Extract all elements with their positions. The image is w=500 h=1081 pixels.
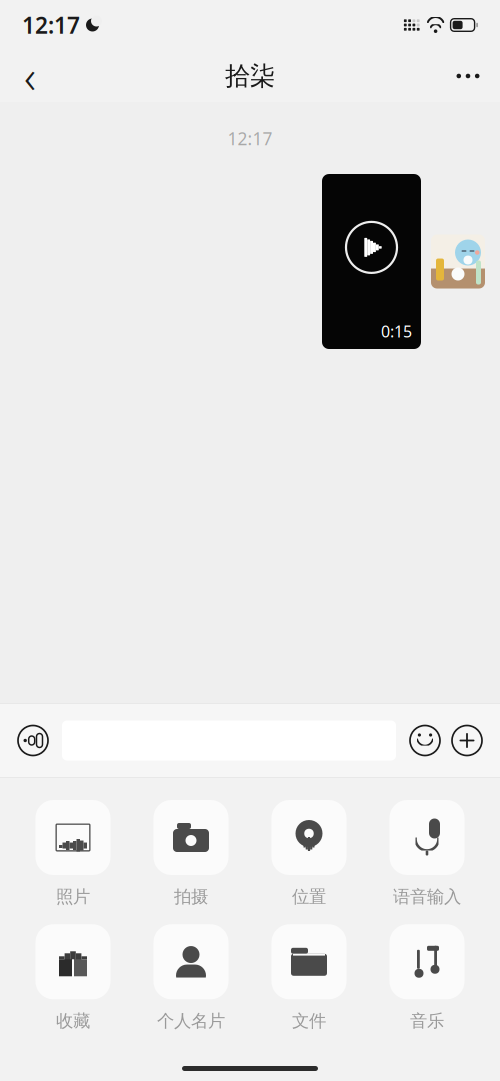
staticText: 收藏 (56, 1010, 90, 1032)
button[interactable]: 照片 (29, 800, 117, 907)
button[interactable]: More (444, 52, 492, 100)
button[interactable]: Voice input (12, 718, 54, 762)
staticText: 位置 (292, 886, 326, 907)
button[interactable]: 拍摄 (147, 800, 235, 907)
staticText: 个人名片 (157, 1010, 225, 1032)
staticText: 12:17 (227, 127, 272, 150)
button[interactable]: Play video, 15 seconds (322, 174, 421, 349)
button[interactable]: 拾柒 profile picture (431, 234, 485, 288)
staticText: 文件 (292, 1010, 326, 1032)
button[interactable]: 语音输入 (383, 800, 471, 907)
staticText: 拾柒 (225, 60, 275, 91)
button[interactable]: More options (446, 718, 488, 762)
button[interactable]: Emoji (404, 718, 446, 762)
button[interactable]: 个人名片 (147, 924, 235, 1032)
button[interactable]: 音乐 (383, 924, 471, 1032)
staticText: 照片 (56, 886, 90, 907)
staticText: 音乐 (410, 1010, 444, 1032)
button[interactable]: Back (8, 52, 52, 100)
button[interactable]: 文件 (265, 924, 353, 1032)
staticText: 语音输入 (393, 886, 461, 907)
staticText: ‹ (24, 46, 36, 106)
button[interactable]: 收藏 (29, 924, 117, 1032)
staticText: 12:17 (22, 10, 80, 40)
button[interactable]: 位置 (265, 800, 353, 907)
staticText: 拍摄 (174, 886, 208, 907)
staticText: 0:15 (381, 321, 412, 342)
